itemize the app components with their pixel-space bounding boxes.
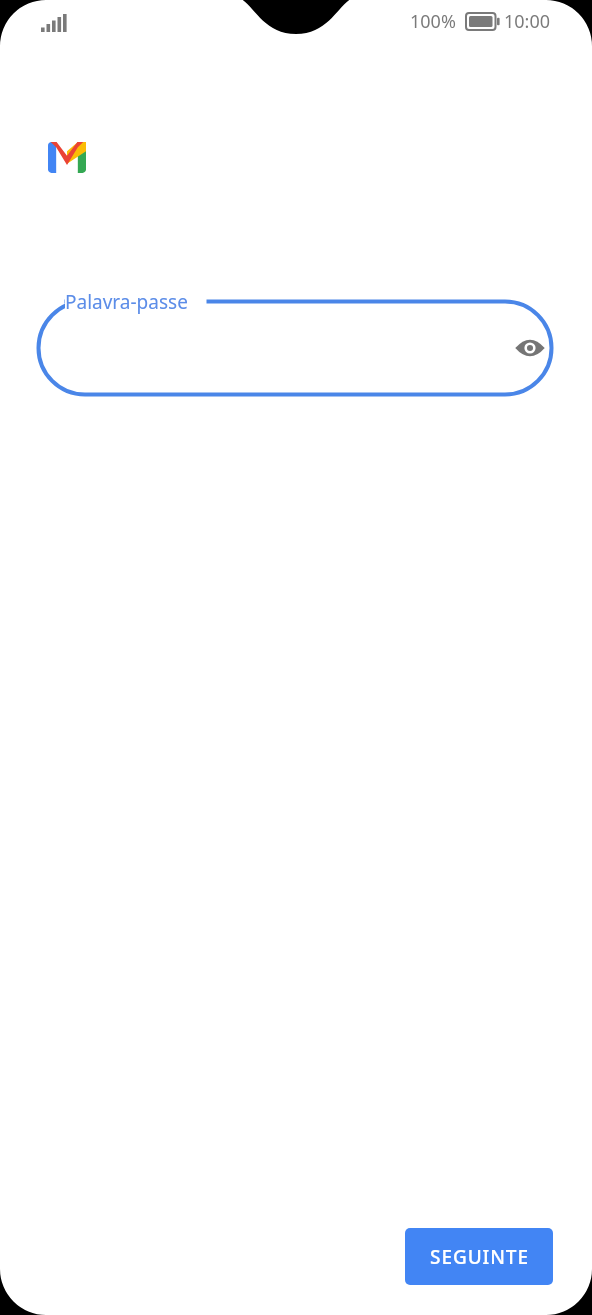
staticText: 100%: [410, 9, 456, 34]
button[interactable]: SEGUINTE: [405, 1228, 553, 1285]
button[interactable]: Palavra-passe: [36, 299, 554, 397]
staticText: 10:00: [504, 9, 551, 34]
button[interactable]: Mostrar palavra-passe: [509, 327, 551, 369]
staticText: Palavra-passe: [65, 289, 188, 315]
staticText: SEGUINTE: [430, 1244, 529, 1270]
